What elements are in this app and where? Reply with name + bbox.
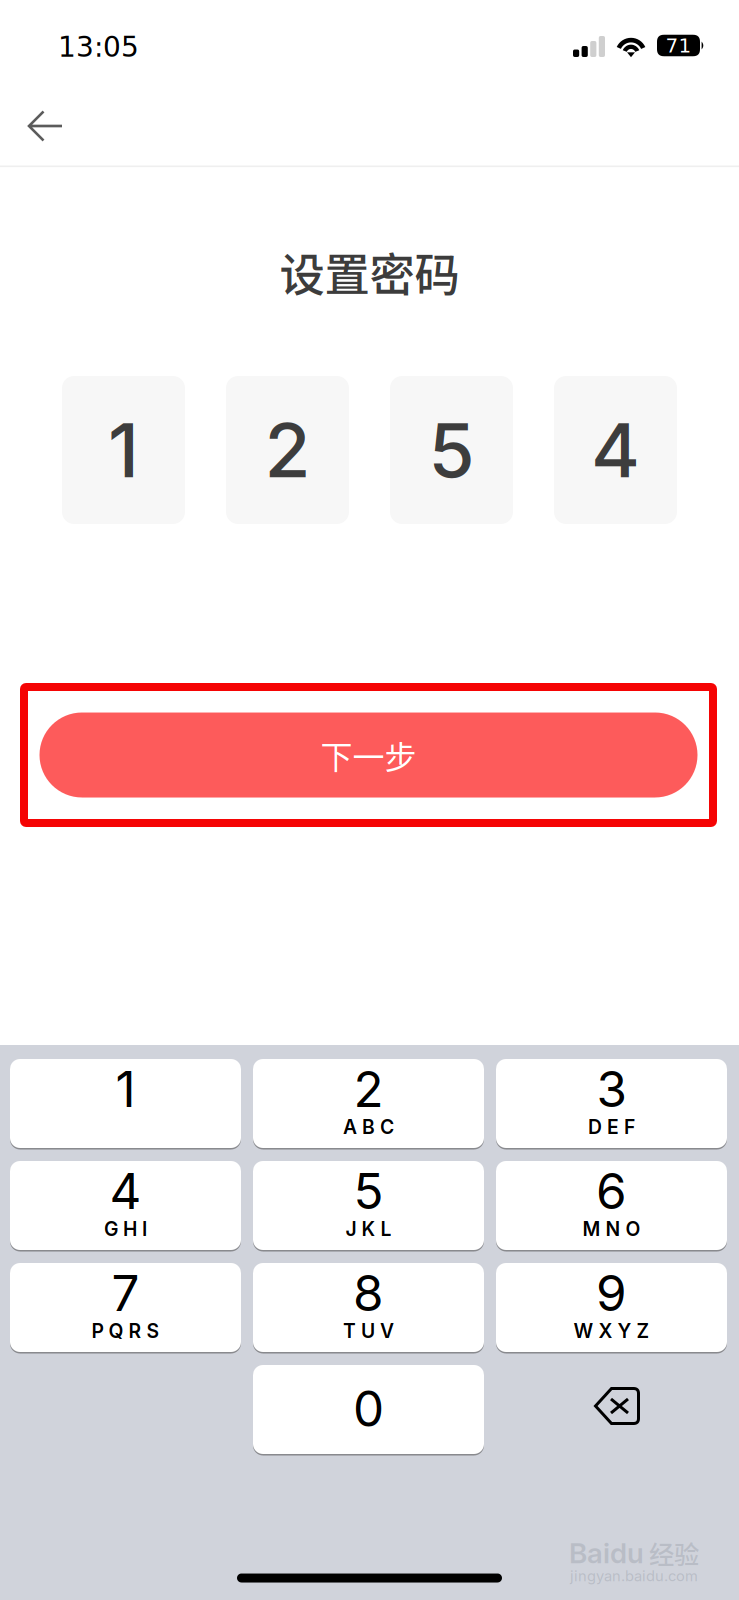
button[interactable]: 6 xyxy=(496,1161,727,1250)
button[interactable]: 0 xyxy=(253,1365,484,1454)
staticText: 1 xyxy=(115,1059,135,1119)
button[interactable]: 下一步 xyxy=(39,712,697,797)
staticText: 下一步 xyxy=(320,732,416,778)
button[interactable]: Delete xyxy=(496,1365,727,1454)
staticText: 经验 xyxy=(649,1535,699,1571)
staticText: Baidu xyxy=(569,1536,644,1570)
staticText: 5 xyxy=(353,1161,383,1221)
staticText: 9 xyxy=(596,1263,627,1323)
button[interactable]: 3 xyxy=(496,1059,727,1148)
staticText: 4 xyxy=(591,405,640,495)
staticText: 5 xyxy=(428,405,474,495)
button[interactable]: 4 xyxy=(10,1161,241,1250)
button[interactable]: 2 xyxy=(253,1059,484,1148)
staticText: 4 xyxy=(109,1161,141,1221)
staticText: jingyan.baidu.com xyxy=(570,1567,698,1585)
staticText: 8 xyxy=(353,1263,384,1323)
staticText: 7 xyxy=(111,1263,139,1323)
staticText: 71 xyxy=(665,34,691,57)
button[interactable]: 8 xyxy=(253,1263,484,1352)
staticText: T U V xyxy=(343,1319,394,1343)
staticText: J K L xyxy=(345,1217,391,1241)
staticText: 设置密码 xyxy=(279,239,459,305)
staticText: A B C xyxy=(343,1115,394,1139)
button[interactable]: 7 xyxy=(10,1263,241,1352)
button[interactable]: 5 xyxy=(253,1161,484,1250)
button[interactable]: 1 xyxy=(10,1059,241,1148)
staticText: M N O xyxy=(582,1217,640,1241)
staticText: 1 xyxy=(108,405,139,495)
staticText: 6 xyxy=(596,1161,627,1221)
staticText: P Q R S xyxy=(91,1319,159,1343)
staticText: 13:05 xyxy=(58,31,139,63)
staticText: 0 xyxy=(353,1379,384,1438)
staticText: W X Y Z xyxy=(573,1319,649,1343)
button[interactable]: Back xyxy=(0,88,85,164)
staticText: G H I xyxy=(104,1217,147,1241)
staticText: D E F xyxy=(588,1115,635,1139)
staticText: 2 xyxy=(353,1059,383,1119)
button[interactable]: 9 xyxy=(496,1263,727,1352)
staticText: 3 xyxy=(596,1059,626,1119)
staticText: 2 xyxy=(264,405,310,495)
